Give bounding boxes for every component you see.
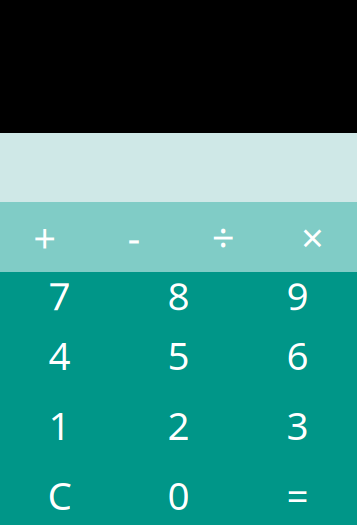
button[interactable]: 9 xyxy=(238,272,357,321)
button[interactable]: 2 xyxy=(119,391,238,461)
staticText: 9 xyxy=(286,269,308,318)
staticText: 4 xyxy=(48,329,70,381)
staticText: 2 xyxy=(167,399,189,451)
staticText: 3 xyxy=(286,399,308,451)
button[interactable]: Equals xyxy=(238,461,357,525)
button[interactable]: 5 xyxy=(119,321,238,391)
button[interactable]: 1 xyxy=(0,391,119,461)
staticText: 0 xyxy=(167,469,189,521)
staticText: + xyxy=(33,210,56,263)
button[interactable]: Clear xyxy=(0,461,119,525)
staticText: 5 xyxy=(167,329,189,381)
button[interactable]: 0 xyxy=(119,461,238,525)
staticText: × xyxy=(301,210,324,263)
staticText: ÷ xyxy=(212,210,235,263)
staticText: 8 xyxy=(167,269,189,318)
staticText: - xyxy=(127,210,140,263)
staticText: 7 xyxy=(48,269,70,318)
button[interactable]: 4 xyxy=(0,321,119,391)
button[interactable]: Multiply xyxy=(268,202,357,272)
button[interactable]: 6 xyxy=(238,321,357,391)
staticText: 6 xyxy=(286,329,308,381)
button[interactable]: Divide xyxy=(178,202,268,272)
staticText: 1 xyxy=(48,399,70,451)
button[interactable]: Subtract xyxy=(89,202,178,272)
button[interactable]: 8 xyxy=(119,272,238,321)
staticText: C xyxy=(47,469,71,521)
button[interactable]: Add xyxy=(0,202,89,272)
button[interactable]: 3 xyxy=(238,391,357,461)
button[interactable]: 7 xyxy=(0,272,119,321)
staticText: = xyxy=(286,469,308,521)
